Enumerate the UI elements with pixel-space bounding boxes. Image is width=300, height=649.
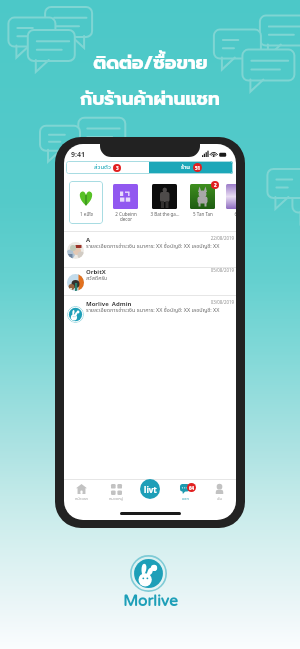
staticText: รายละเอียดการชำระเงิน ธนาคาร: XX ชื่อบัญ… bbox=[86, 242, 236, 250]
button[interactable]: OrbitX bbox=[64, 267, 236, 295]
button[interactable]: 2 bbox=[183, 184, 222, 218]
staticText: ร้าน bbox=[181, 163, 191, 172]
button[interactable]: 1 หมีโช bbox=[69, 181, 103, 224]
staticText: OrbitX bbox=[86, 268, 106, 277]
button[interactable]: ส่วนตัว bbox=[66, 161, 149, 174]
staticText: 9:41 bbox=[71, 150, 85, 160]
staticText: livt bbox=[144, 484, 157, 495]
staticText: 2 Cubeinn decor bbox=[115, 211, 137, 223]
staticText: แชท bbox=[182, 496, 189, 502]
staticText: 6 ยา bbox=[234, 211, 236, 218]
staticText: 03/08/2019 bbox=[204, 299, 234, 305]
staticText: ติดต่อ/ซื้อขาย bbox=[93, 49, 208, 77]
button[interactable]: 3 Bat the ga... bbox=[145, 184, 184, 218]
staticText: 5 Tan Tan bbox=[193, 211, 213, 218]
button[interactable]: A bbox=[64, 231, 236, 268]
staticText: ฉัน bbox=[217, 496, 222, 502]
staticText: หน้าแรก bbox=[75, 496, 89, 502]
staticText: Morlive Admin bbox=[86, 300, 132, 309]
staticText: Morlive bbox=[123, 592, 178, 611]
button[interactable]: หมวดหมู่ bbox=[99, 480, 134, 508]
button[interactable]: Live bbox=[140, 479, 160, 499]
button[interactable]: 2 Cubeinn decor bbox=[106, 184, 145, 223]
staticText: 3 bbox=[116, 165, 119, 171]
button[interactable]: หน้าแรก bbox=[64, 480, 99, 508]
staticText: สวัสดีครับ bbox=[86, 274, 236, 282]
staticText: หมวดหมู่ bbox=[109, 496, 124, 502]
button[interactable]: 6 ยา bbox=[219, 184, 236, 218]
button[interactable]: ฉัน bbox=[202, 480, 236, 508]
staticText: 22/08/2019 bbox=[204, 235, 234, 241]
button[interactable]: ร้าน bbox=[149, 161, 233, 174]
staticText: ส่วนตัว bbox=[94, 163, 111, 172]
button[interactable]: 64 bbox=[168, 480, 202, 508]
staticText: กับร้านค้าผ่านแชท bbox=[80, 85, 220, 113]
staticText: 3 Bat the ga... bbox=[150, 211, 180, 218]
staticText: รายละเอียดการชำระเงิน ธนาคาร: XX ชื่อบัญ… bbox=[86, 306, 236, 314]
staticText: 64 bbox=[189, 485, 195, 491]
staticText: 2 bbox=[214, 182, 217, 188]
staticText: 51 bbox=[195, 165, 201, 171]
button[interactable]: Morlive Admin bbox=[64, 295, 236, 333]
staticText: A bbox=[86, 236, 91, 245]
staticText: 05/08/2019 bbox=[204, 267, 234, 273]
staticText: 1 หมีโช bbox=[80, 211, 93, 218]
